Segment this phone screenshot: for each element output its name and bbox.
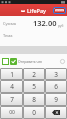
button[interactable]: 2 bbox=[23, 68, 45, 80]
button[interactable]: 5 bbox=[23, 80, 45, 93]
staticText: 8 bbox=[32, 95, 36, 104]
staticText: руб bbox=[58, 24, 64, 28]
staticText: Отправить чек bbox=[18, 59, 43, 64]
staticText: Сумма bbox=[3, 21, 16, 26]
button[interactable]: 3 bbox=[45, 68, 67, 80]
button[interactable]: Сумма bbox=[0, 16, 67, 30]
staticText: Тема bbox=[3, 33, 13, 38]
button[interactable]: Оплата bbox=[54, 8, 65, 13]
button[interactable]: 0 bbox=[23, 106, 45, 119]
button[interactable]: Подробнее bbox=[60, 59, 65, 64]
button[interactable]: Тема bbox=[0, 30, 67, 46]
button[interactable]: 8 bbox=[23, 93, 45, 106]
button[interactable]: Отправить чек bbox=[0, 54, 67, 68]
staticText: 9 bbox=[54, 95, 58, 104]
button[interactable]: 9 bbox=[45, 93, 67, 106]
button[interactable]: 4 bbox=[0, 80, 23, 93]
staticText: 5 bbox=[32, 82, 36, 91]
staticText: 4 bbox=[10, 82, 14, 91]
staticText: 132.00 bbox=[33, 18, 57, 28]
button[interactable]: 7 bbox=[0, 93, 23, 106]
staticText: 00 bbox=[9, 109, 15, 116]
staticText: 2 bbox=[32, 70, 36, 79]
button[interactable]: Удалить bbox=[45, 106, 67, 119]
button[interactable]: 1 bbox=[0, 68, 23, 80]
staticText: 7 bbox=[10, 95, 14, 104]
staticText: 6 bbox=[54, 82, 58, 91]
staticText: 0 bbox=[32, 108, 36, 117]
button[interactable]: 00 bbox=[0, 106, 23, 119]
staticText: 1 bbox=[10, 70, 14, 79]
button[interactable]: 6 bbox=[45, 80, 67, 93]
staticText: LifePay bbox=[27, 7, 46, 14]
staticText: Оплатить bbox=[54, 8, 65, 13]
staticText: 3 bbox=[54, 70, 58, 79]
